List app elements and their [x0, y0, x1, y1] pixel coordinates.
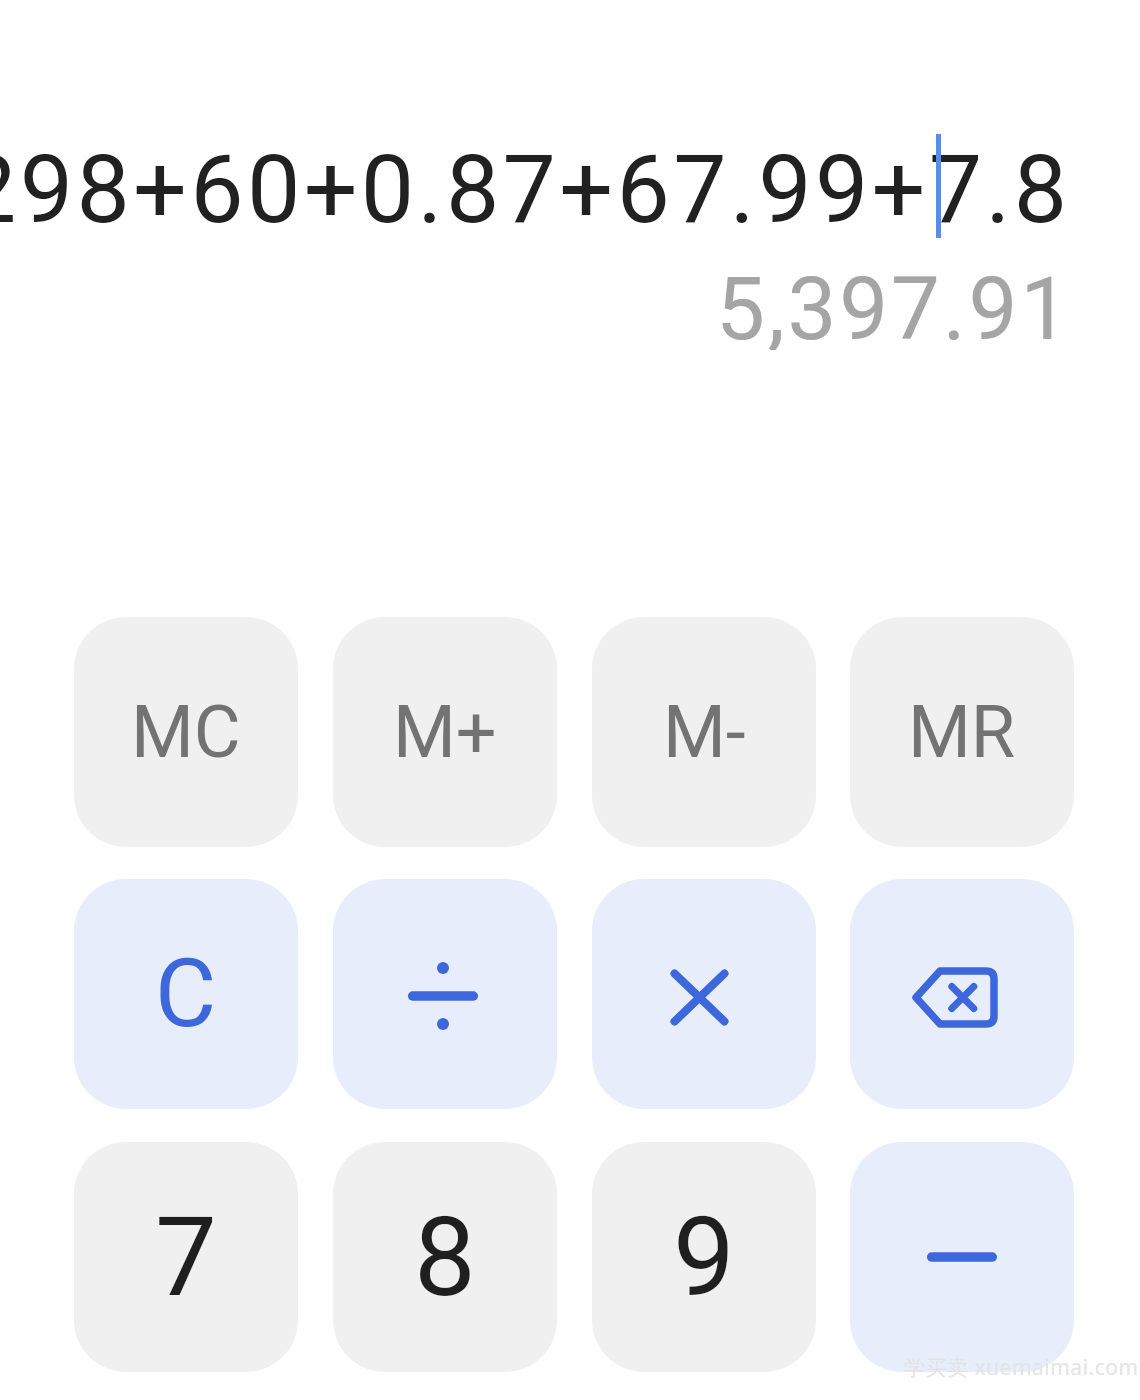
button[interactable]: 9: [592, 1142, 816, 1372]
staticText: 298+60+0.87+67.99+7.8: [0, 134, 1071, 244]
staticText: M+: [393, 690, 497, 774]
button[interactable]: [850, 1142, 1074, 1372]
staticText: 学买卖 xuemaimai.com: [904, 1353, 1139, 1382]
button[interactable]: MR: [850, 617, 1074, 847]
staticText: C: [155, 939, 217, 1049]
button[interactable]: M-: [592, 617, 816, 847]
button[interactable]: [592, 879, 816, 1109]
button[interactable]: MC: [74, 617, 298, 847]
staticText: 8: [414, 1193, 476, 1322]
staticText: 7: [155, 1193, 217, 1322]
button[interactable]: C: [74, 879, 298, 1109]
staticText: M-: [663, 690, 746, 774]
button[interactable]: 7: [74, 1142, 298, 1372]
button[interactable]: [333, 879, 557, 1109]
staticText: MC: [131, 690, 241, 774]
button[interactable]: [850, 879, 1074, 1109]
button[interactable]: 8: [333, 1142, 557, 1372]
staticText: MR: [908, 690, 1016, 774]
staticText: 5,397.91: [716, 258, 1072, 350]
staticText: 9: [673, 1193, 735, 1322]
button[interactable]: M+: [333, 617, 557, 847]
